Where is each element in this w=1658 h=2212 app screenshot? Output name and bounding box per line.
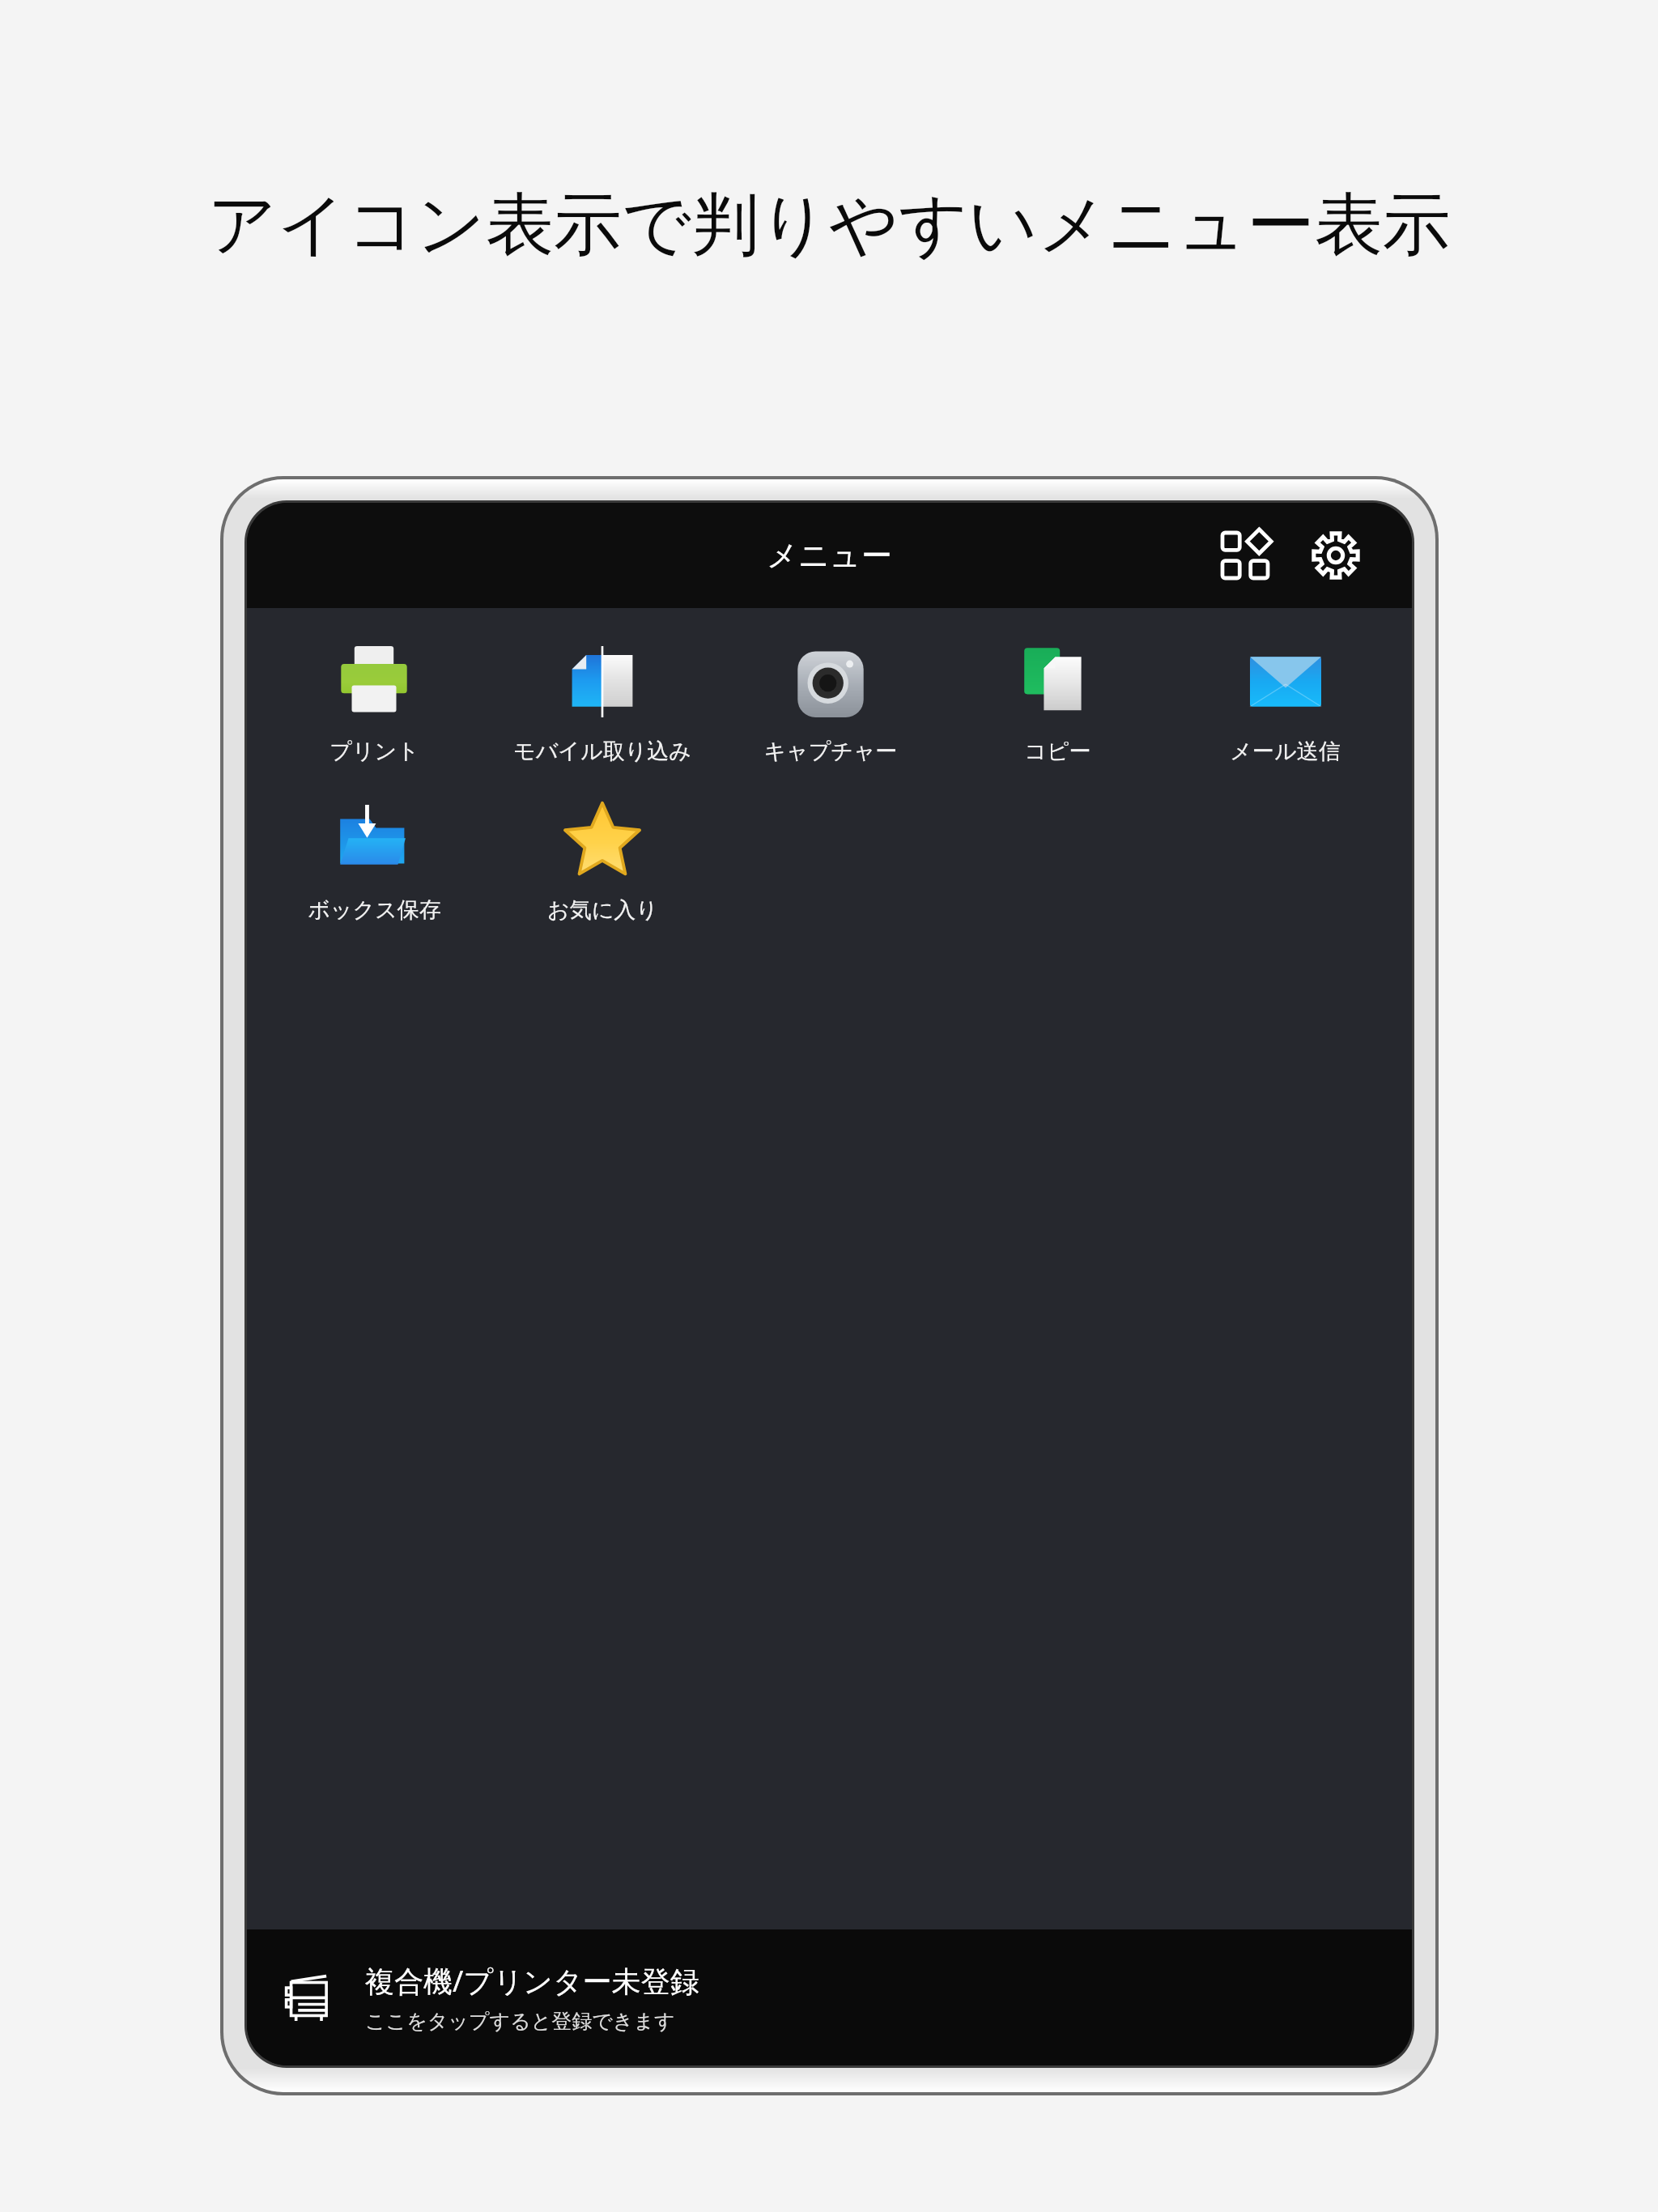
- staticText: ボックス保存: [308, 896, 441, 924]
- staticText: ここをタップすると登録できます: [365, 2009, 675, 2034]
- staticText: メール送信: [1230, 738, 1341, 765]
- button[interactable]: プリント: [260, 626, 488, 773]
- button[interactable]: メール送信: [1171, 626, 1399, 773]
- button[interactable]: Settings: [1297, 517, 1375, 594]
- button[interactable]: モバイル取り込み: [488, 626, 716, 773]
- staticText: アイコン表示で判りやすいメニュー表示: [0, 182, 1658, 268]
- staticText: お気に入り: [547, 896, 658, 924]
- button[interactable]: コピー: [944, 626, 1171, 773]
- button[interactable]: ボックス保存: [260, 785, 488, 932]
- staticText: プリント: [329, 738, 419, 765]
- staticText: コピー: [1024, 738, 1091, 765]
- button[interactable]: 複合機/プリンター未登録: [247, 1929, 1412, 2065]
- button[interactable]: キャプチャー: [716, 626, 944, 773]
- staticText: モバイル取り込み: [513, 738, 691, 765]
- staticText: 複合機/プリンター未登録: [365, 1961, 699, 2001]
- staticText: キャプチャー: [763, 738, 898, 765]
- staticText: メニュー: [767, 536, 892, 575]
- button[interactable]: Change view layout: [1206, 517, 1284, 594]
- button[interactable]: お気に入り: [488, 785, 716, 932]
